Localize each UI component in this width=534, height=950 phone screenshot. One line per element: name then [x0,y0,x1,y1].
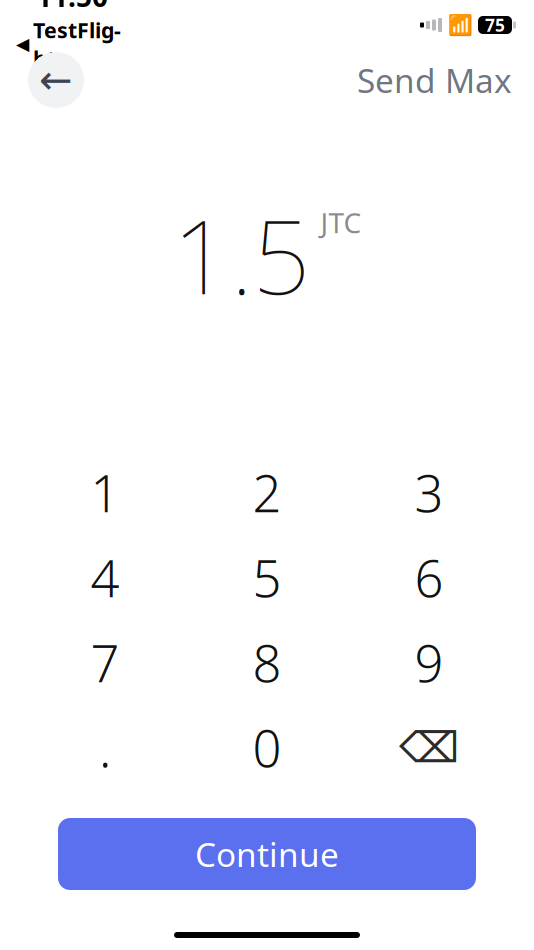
staticText: 7 [90,629,119,696]
button[interactable]: 8 [186,620,348,705]
staticText: . [99,714,111,781]
button[interactable]: Continue [58,818,476,890]
staticText: 8 [252,629,281,696]
staticText: 5 [252,544,281,611]
staticText: 📶 [447,14,472,36]
button[interactable]: 5 [186,535,348,620]
staticText: 3 [414,459,443,526]
button[interactable]: Send Max [357,58,512,102]
staticText: ⌫ [399,723,459,772]
button[interactable]: 0 [186,705,348,790]
button[interactable]: 2 [186,450,348,535]
button[interactable]: . [24,705,186,790]
button[interactable]: Back [28,52,84,108]
staticText: 6 [414,544,443,611]
staticText: 0 [252,714,281,781]
staticText: 75 [485,13,505,36]
button[interactable]: Delete [348,705,510,790]
button[interactable]: 7 [24,620,186,705]
staticText: 9 [414,629,443,696]
staticText: 4 [90,544,119,611]
staticText: 2 [252,459,281,526]
button[interactable]: 9 [348,620,510,705]
staticText: 1 [90,459,119,526]
button[interactable]: 3 [348,450,510,535]
staticText: ◀ [16,34,29,54]
staticText: JTC [320,204,361,241]
button[interactable]: 4 [24,535,186,620]
staticText: ← [39,57,73,103]
staticText: TestFlight [33,16,121,72]
staticText: 11:50 [36,0,108,15]
staticText: Continue [195,832,339,876]
button[interactable]: 1 [24,450,186,535]
button[interactable]: 6 [348,535,510,620]
staticText: 1.5 [172,188,310,322]
staticText: Send Max [357,58,512,102]
